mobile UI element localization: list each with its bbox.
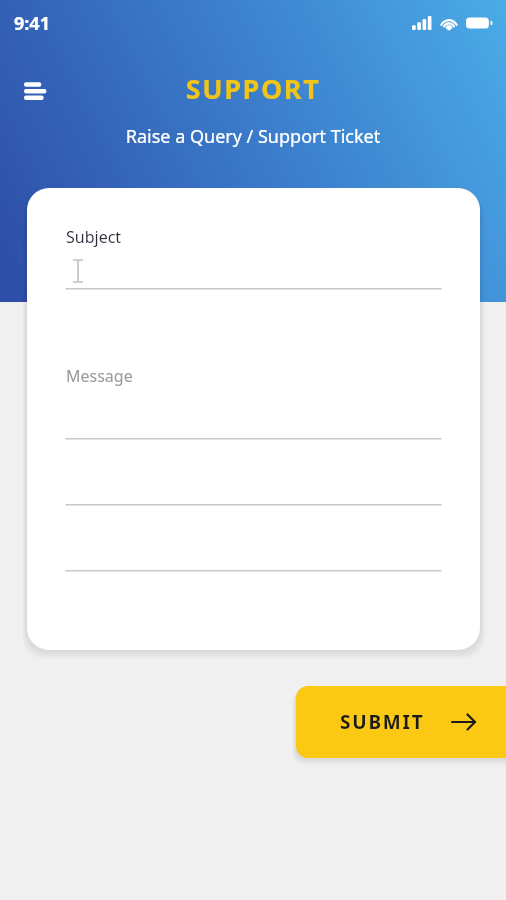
button[interactable] [66, 540, 441, 572]
button[interactable] [66, 474, 441, 506]
button[interactable]: SUBMIT [296, 686, 506, 758]
button[interactable]: Open navigation menu [16, 68, 60, 112]
staticText: Raise a Query / Support Ticket [0, 124, 506, 149]
staticText: 9:41 [14, 11, 50, 36]
staticText: Subject [66, 226, 122, 248]
button[interactable] [66, 408, 441, 440]
staticText: SUPPORT [0, 70, 506, 107]
staticText: SUBMIT [340, 709, 425, 735]
staticText: Message [66, 365, 133, 387]
button[interactable] [66, 252, 441, 292]
